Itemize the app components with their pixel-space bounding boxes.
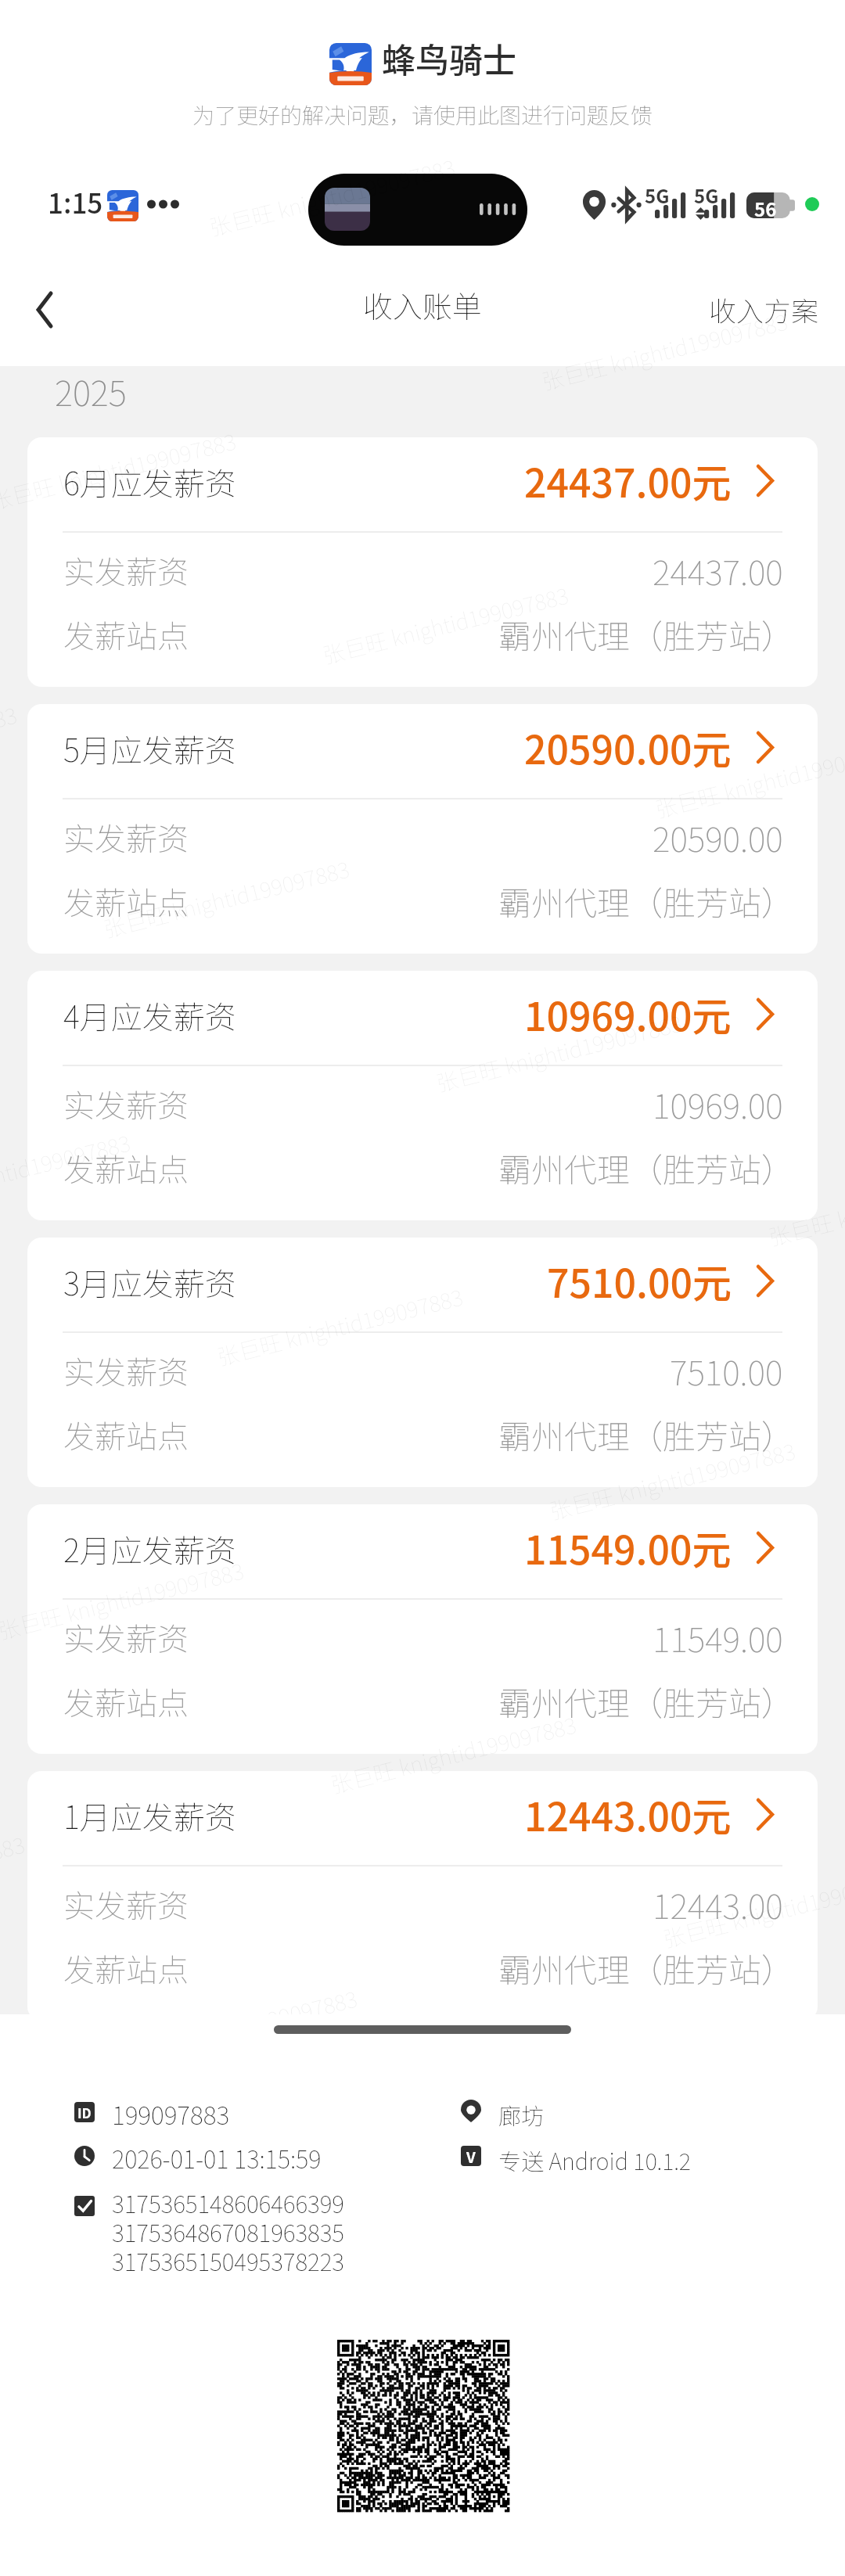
staticText: 张巨旺 knightid199097883: [100, 852, 353, 945]
staticText: 2025: [55, 366, 127, 416]
button[interactable]: 3月应发薪资: [27, 1238, 818, 1487]
staticText: 发薪站点: [63, 612, 189, 657]
staticText: 5月应发薪资: [63, 726, 236, 771]
staticText: 24437.00元: [524, 452, 732, 508]
staticText: 张巨旺 knightid199097883: [319, 578, 572, 671]
staticText: 实发薪资: [63, 1881, 189, 1927]
staticText: 收入账单: [363, 283, 483, 326]
staticText: 实发薪资: [63, 814, 189, 860]
staticText: 5G: [694, 181, 719, 209]
staticText: 霸州代理（胜芳站）: [498, 877, 795, 925]
button[interactable]: Back: [5, 253, 84, 366]
staticText: 12443.00: [653, 1880, 783, 1928]
staticText: 2026-01-01 13:15:59: [112, 2140, 322, 2175]
staticText: 11549.00元: [524, 1519, 732, 1575]
staticText: 张巨旺 knightid199097883: [652, 733, 845, 825]
staticText: 霸州代理（胜芳站）: [498, 1410, 795, 1458]
staticText: 3175365148606466399 3175364867081963835 …: [112, 2186, 344, 2278]
staticText: 实发薪资: [63, 1081, 189, 1126]
staticText: 发薪站点: [63, 1145, 189, 1191]
staticText: 1月应发薪资: [63, 1793, 236, 1838]
staticText: 为了更好的解决问题，请使用此图进行问题反馈: [192, 99, 653, 131]
staticText: 发薪站点: [63, 1679, 189, 1724]
staticText: 2月应发薪资: [63, 1526, 236, 1572]
staticText: 199097883: [112, 2096, 230, 2132]
staticText: 24437.00: [653, 546, 783, 595]
staticText: 7510.00: [670, 1346, 783, 1395]
staticText: 11549.00: [653, 1613, 783, 1662]
staticText: 4月应发薪资: [63, 993, 236, 1038]
staticText: 蜂鸟骑士: [382, 34, 516, 82]
staticText: 20590.00元: [524, 719, 732, 775]
button[interactable]: 收入方案: [678, 263, 845, 356]
staticText: 发薪站点: [63, 878, 189, 924]
staticText: 张巨旺 knightid199097883: [108, 1982, 361, 2014]
staticText: 发薪站点: [63, 1412, 189, 1457]
staticText: 20590.00: [653, 813, 783, 861]
staticText: 实发薪资: [63, 548, 189, 593]
staticText: 张巨旺 knightid199097883: [0, 1554, 247, 1646]
staticText: 1:15: [48, 181, 103, 221]
staticText: 发薪站点: [63, 1945, 189, 1991]
staticText: 10969.00: [653, 1080, 783, 1128]
staticText: ID: [77, 2103, 92, 2122]
staticText: 廊坊: [498, 2098, 545, 2131]
button[interactable]: 1月应发薪资: [27, 1771, 818, 2014]
staticText: 霸州代理（胜芳站）: [498, 610, 795, 658]
staticText: 张巨旺 knightid199097883: [765, 1160, 845, 1253]
button[interactable]: 4月应发薪资: [27, 971, 818, 1220]
staticText: 专送 Android 10.1.2: [498, 2143, 692, 2176]
button[interactable]: 6月应发薪资: [27, 437, 818, 687]
staticText: 霸州代理（胜芳站）: [498, 1944, 795, 1992]
staticText: 实发薪资: [63, 1348, 189, 1393]
staticText: 张巨旺 knightid199097883: [433, 1006, 685, 1099]
button[interactable]: 2月应发薪资: [27, 1504, 818, 1754]
staticText: 12443.00元: [524, 1786, 732, 1842]
staticText: 张巨旺 knightid199097883: [659, 1862, 845, 1954]
staticText: 收入方案: [709, 289, 819, 329]
staticText: 张巨旺 knightid199097883: [327, 1708, 580, 1800]
staticText: 霸州代理（胜芳站）: [498, 1144, 795, 1191]
staticText: V: [466, 2146, 476, 2166]
staticText: 实发薪资: [63, 1615, 189, 1660]
button[interactable]: 5月应发薪资: [27, 704, 818, 954]
staticText: 张巨旺 knightid199097883: [0, 1126, 134, 1218]
staticText: 10969.00元: [524, 986, 732, 1042]
staticText: 7510.00元: [547, 1252, 732, 1309]
staticText: 6月应发薪资: [63, 459, 236, 505]
staticText: 张巨旺 knightid199097883: [546, 1434, 799, 1527]
staticText: 56: [754, 195, 777, 221]
staticText: 5G: [645, 181, 670, 209]
staticText: 霸州代理（胜芳站）: [498, 1677, 795, 1725]
staticText: 张巨旺 knightid199097883: [213, 1280, 466, 1372]
staticText: 张巨旺 knightid199097883: [206, 151, 459, 243]
staticText: 张巨旺 knightid199097883: [538, 305, 791, 397]
staticText: 3月应发薪资: [63, 1259, 236, 1305]
staticText: 张巨旺 knightid199097883: [0, 424, 240, 517]
